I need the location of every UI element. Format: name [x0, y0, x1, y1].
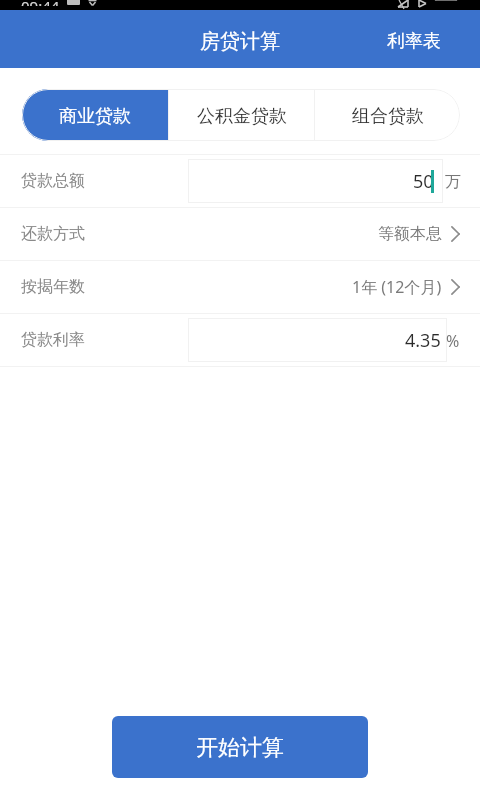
staticText: 等额本息 [378, 224, 442, 244]
button[interactable]: 公积金贷款 [169, 89, 314, 141]
button[interactable]: 还款方式 [0, 208, 480, 260]
button[interactable]: 开始计算 [112, 716, 368, 778]
staticText: 利率表 [387, 30, 441, 53]
staticText: 贷款总额 [21, 171, 85, 191]
button[interactable]: 利率表 [363, 10, 480, 68]
staticText: 贷款利率 [21, 330, 85, 350]
button[interactable]: 商业贷款 [22, 89, 168, 141]
staticText: 还款方式 [21, 224, 85, 244]
staticText: 房贷计算 [200, 29, 280, 54]
staticText: 1年 (12个月) [352, 276, 442, 298]
staticText: 万 [445, 172, 461, 192]
button[interactable]: 组合贷款 [315, 89, 460, 141]
staticText: 开始计算 [196, 734, 284, 762]
staticText: % [446, 330, 460, 352]
staticText: 组合贷款 [352, 105, 424, 128]
button[interactable]: 50 [188, 159, 443, 203]
staticText: 4.35 [405, 328, 441, 353]
staticText: 公积金贷款 [197, 105, 287, 128]
staticText: 按揭年数 [21, 277, 85, 297]
button[interactable]: 按揭年数 [0, 261, 480, 313]
staticText: 商业贷款 [59, 105, 131, 128]
button[interactable]: 4.35 [188, 318, 447, 362]
staticText: 50 [413, 169, 434, 194]
staticText: 09:44 [21, 0, 60, 6]
